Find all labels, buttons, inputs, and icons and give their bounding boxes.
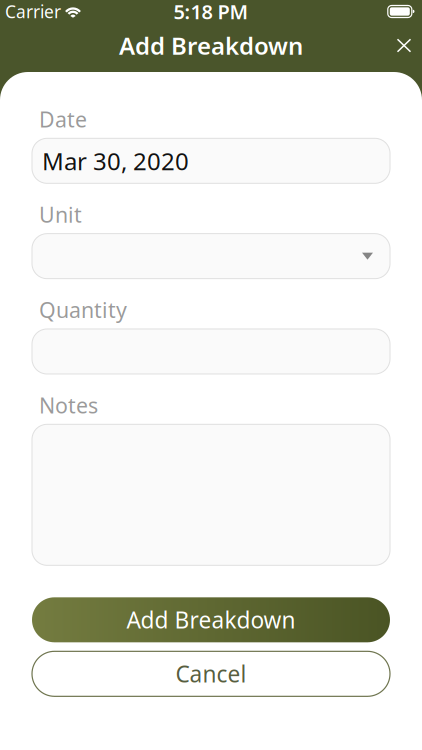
button[interactable]: Quantity xyxy=(32,329,390,374)
button[interactable]: Close xyxy=(390,31,418,59)
staticText: Notes xyxy=(39,391,98,419)
staticText: Unit xyxy=(39,200,82,229)
staticText: 5:18 PM xyxy=(173,0,248,25)
staticText: Date xyxy=(39,105,87,133)
staticText: Carrier xyxy=(5,0,61,23)
staticText: Add Breakdown xyxy=(119,30,303,61)
button[interactable]: Cancel xyxy=(32,651,390,696)
staticText: Cancel xyxy=(175,659,246,689)
button[interactable]: Unit xyxy=(32,234,390,279)
staticText: Add Breakdown xyxy=(126,605,295,635)
button[interactable]: Add Breakdown xyxy=(32,597,390,642)
staticText: Quantity xyxy=(39,296,127,324)
button[interactable]: Date xyxy=(32,138,390,183)
staticText: Mar 30, 2020 xyxy=(42,145,189,177)
